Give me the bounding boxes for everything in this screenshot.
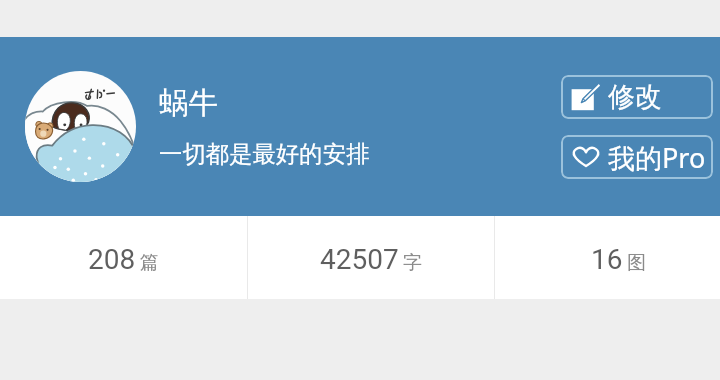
button[interactable]: 42507 bbox=[248, 216, 494, 299]
staticText: 篇 bbox=[140, 251, 159, 275]
staticText: 蜗牛 bbox=[159, 85, 218, 122]
staticText: 修改 bbox=[608, 80, 662, 114]
staticText: 字 bbox=[403, 251, 422, 275]
button[interactable]: Profile avatar bbox=[25, 71, 136, 182]
button[interactable]: 我的Pro bbox=[561, 135, 713, 179]
button[interactable]: 修改 bbox=[561, 75, 713, 119]
staticText: 我的Pro bbox=[608, 139, 706, 176]
staticText: 图 bbox=[627, 251, 646, 275]
staticText: 一切都是最好的安排 bbox=[159, 139, 370, 168]
staticText: 208 bbox=[88, 243, 136, 276]
staticText: 42507 bbox=[320, 243, 399, 276]
button[interactable]: 208 bbox=[0, 216, 247, 299]
staticText: 16 bbox=[591, 243, 623, 276]
button[interactable]: 16 bbox=[495, 216, 720, 299]
